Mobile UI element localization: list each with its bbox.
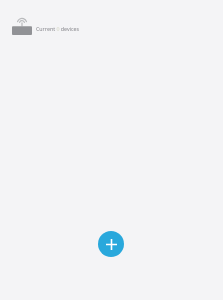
button[interactable]: Add device (98, 231, 124, 257)
button[interactable]: Current 0 devices (0, 13, 223, 35)
staticText: Current 0 devices (36, 25, 80, 32)
